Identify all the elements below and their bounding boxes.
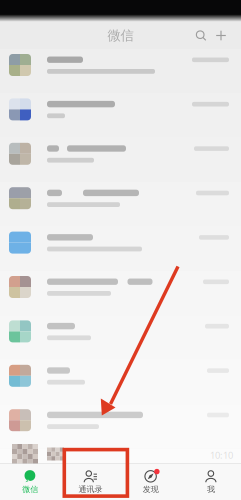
button[interactable] [0,360,241,404]
staticText: 10:10 [210,449,233,461]
button[interactable]: 10:10 [0,449,241,493]
staticText: 通讯录 [78,484,102,494]
button[interactable] [0,49,241,93]
button[interactable]: 我 [181,464,241,500]
button[interactable] [0,93,241,138]
button[interactable] [0,315,241,360]
staticText: 我 [207,484,215,494]
button[interactable]: Search [191,24,211,46]
button[interactable] [0,271,241,315]
button[interactable]: New chat [211,24,231,46]
staticText: 发现 [143,484,159,494]
button[interactable] [0,404,241,449]
staticText: 微信 [107,27,133,44]
button[interactable]: 发现 [120,464,181,500]
staticText: 微信 [22,484,38,494]
button[interactable] [0,182,241,227]
button[interactable]: 通讯录 [60,464,120,500]
button[interactable] [0,227,241,271]
button[interactable]: 微信 [0,464,60,500]
button[interactable] [0,138,241,182]
